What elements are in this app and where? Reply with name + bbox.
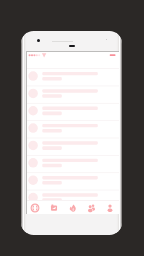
button[interactable]: Camera xyxy=(44,201,63,214)
button[interactable] xyxy=(27,187,119,204)
button[interactable] xyxy=(27,136,119,153)
button[interactable] xyxy=(27,68,119,85)
button[interactable] xyxy=(27,170,119,187)
button[interactable] xyxy=(27,85,119,102)
button[interactable] xyxy=(27,102,119,119)
button[interactable]: Discover xyxy=(25,201,44,214)
button[interactable] xyxy=(27,119,119,136)
button[interactable]: Groups xyxy=(81,201,100,214)
button[interactable] xyxy=(27,153,119,170)
button[interactable]: Profile xyxy=(100,201,119,214)
button[interactable]: Trending xyxy=(63,201,82,214)
